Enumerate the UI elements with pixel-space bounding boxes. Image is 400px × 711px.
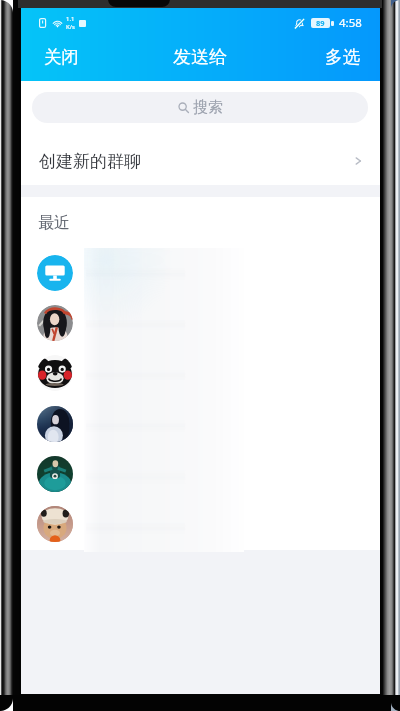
staticText: 关闭 bbox=[44, 46, 79, 68]
button[interactable]: 搜索 bbox=[32, 92, 368, 123]
staticText: 发送给 bbox=[173, 46, 227, 69]
staticText: 4:58 bbox=[339, 15, 362, 31]
staticText: 89 bbox=[316, 18, 325, 28]
staticText: 搜索 bbox=[193, 98, 223, 117]
button[interactable]: 最近聊天 3 bbox=[20, 348, 380, 398]
button[interactable]: 最近聊天 2 bbox=[20, 298, 380, 348]
button[interactable]: 我的电脑 bbox=[20, 248, 380, 298]
staticText: K/s bbox=[66, 23, 75, 31]
button[interactable]: 创建新的群聊 bbox=[20, 135, 380, 187]
staticText: 多选 bbox=[325, 46, 360, 68]
staticText: 创建新的群聊 bbox=[39, 151, 141, 172]
button[interactable]: 最近聊天 6 bbox=[20, 499, 380, 549]
staticText: 最近 bbox=[38, 213, 70, 231]
button[interactable]: 最近聊天 4 bbox=[20, 399, 380, 449]
staticText: 1.1 bbox=[66, 15, 75, 23]
button[interactable]: 多选 bbox=[305, 34, 380, 80]
button[interactable]: 最近聊天 5 bbox=[20, 449, 380, 499]
button[interactable]: 关闭 bbox=[20, 34, 95, 80]
